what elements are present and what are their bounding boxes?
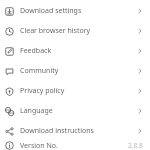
staticText: Community xyxy=(20,66,137,76)
staticText: Privacy policy xyxy=(20,86,137,96)
button[interactable]: Clear browser history xyxy=(0,21,150,41)
staticText: Language xyxy=(20,106,137,116)
staticText: Download instructions xyxy=(20,126,137,136)
button[interactable]: Feedback xyxy=(0,41,150,61)
staticText: Feedback xyxy=(20,46,137,56)
staticText: Clear browser history xyxy=(20,26,137,36)
button[interactable]: Community xyxy=(0,61,150,81)
button[interactable]: Download settings xyxy=(0,1,150,21)
staticText: 2.8.8 xyxy=(128,141,143,150)
button[interactable]: Download instructions xyxy=(0,121,150,141)
button[interactable]: Language xyxy=(0,101,150,121)
staticText: Version No. xyxy=(20,141,128,150)
button[interactable]: Version No. xyxy=(0,141,150,150)
button[interactable]: Privacy policy xyxy=(0,81,150,101)
staticText: Download settings xyxy=(20,6,137,16)
